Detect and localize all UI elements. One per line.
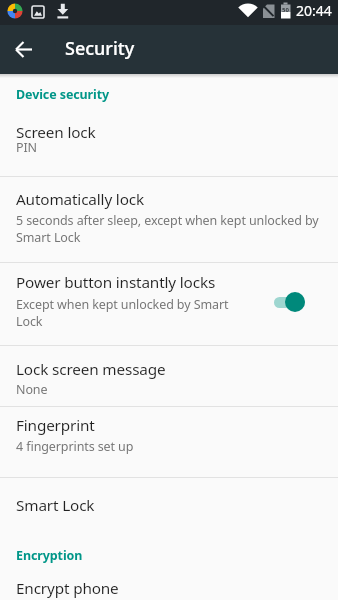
button[interactable] (0, 478, 338, 533)
staticText: Screen lock (16, 122, 96, 143)
staticText: Lock screen message (16, 359, 166, 380)
staticText: 20:44 (296, 1, 332, 20)
staticText: Security (65, 36, 135, 61)
staticText: Power button instantly locks (16, 272, 216, 293)
staticText: None (16, 381, 48, 398)
staticText: PIN (16, 139, 38, 156)
staticText: Except when kept unlocked by Smart Lock (16, 296, 229, 329)
button[interactable] (0, 570, 338, 600)
staticText: 50 (282, 6, 289, 14)
button[interactable] (0, 25, 48, 73)
staticText: Automatically lock (16, 189, 144, 210)
staticText: Smart Lock (16, 495, 95, 516)
button[interactable] (0, 407, 338, 477)
staticText: 5 seconds after sleep, except when kept … (16, 212, 319, 245)
staticText: Device security (16, 86, 110, 103)
button[interactable] (0, 263, 338, 345)
button[interactable] (0, 346, 338, 406)
button[interactable] (0, 177, 338, 262)
button[interactable] (0, 113, 338, 176)
button[interactable] (270, 287, 310, 317)
staticText: Fingerprint (16, 415, 95, 436)
staticText: 4 fingerprints set up (16, 438, 134, 455)
staticText: Encrypt phone (16, 578, 119, 599)
staticText: Encryption (16, 547, 83, 564)
